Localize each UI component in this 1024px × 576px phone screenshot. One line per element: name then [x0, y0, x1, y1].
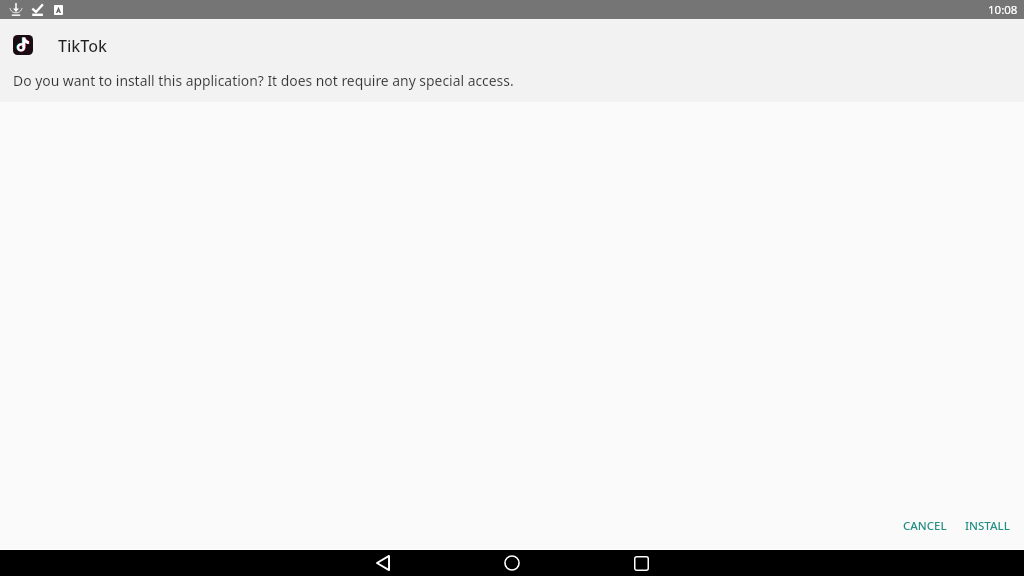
button[interactable]: Back	[370, 550, 396, 576]
other: Download complete	[32, 4, 43, 16]
staticText: Do you want to install this application?…	[13, 71, 514, 90]
button[interactable]: INSTALL	[957, 506, 1018, 546]
staticText: INSTALL	[965, 518, 1010, 534]
staticText: 10:08	[988, 2, 1018, 18]
button[interactable]: Home	[499, 550, 525, 576]
staticText: TikTok	[58, 35, 107, 57]
button[interactable]: Recent apps	[628, 550, 654, 576]
staticText: CANCEL	[903, 518, 947, 534]
other: App notification	[54, 5, 63, 15]
other: Downloading	[10, 3, 22, 16]
button[interactable]: CANCEL	[895, 506, 955, 546]
